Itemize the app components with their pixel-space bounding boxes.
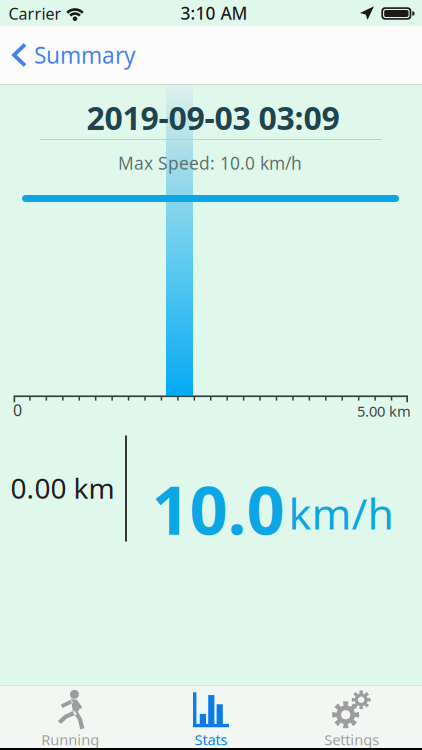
staticText: Running (41, 730, 99, 749)
staticText: Stats (194, 730, 227, 749)
staticText: 0 (13, 399, 22, 421)
button[interactable]: Summary (0, 26, 148, 86)
staticText: Settings (324, 730, 379, 749)
button[interactable]: Running (0, 682, 141, 750)
staticText: 5.00 km (357, 401, 411, 421)
staticText: 10.0 (151, 465, 284, 553)
staticText: Max Speed: 10.0 km/h (118, 151, 302, 174)
staticText: 2019-09-03 03:09 (86, 96, 339, 139)
staticText: 0.00 km (10, 469, 114, 507)
button[interactable]: Stats (141, 682, 281, 750)
staticText: 3:10 AM (180, 1, 247, 24)
staticText: km/h (288, 485, 393, 541)
button[interactable]: Settings (281, 682, 422, 750)
staticText: Summary (34, 40, 136, 70)
staticText: Carrier (8, 3, 61, 24)
